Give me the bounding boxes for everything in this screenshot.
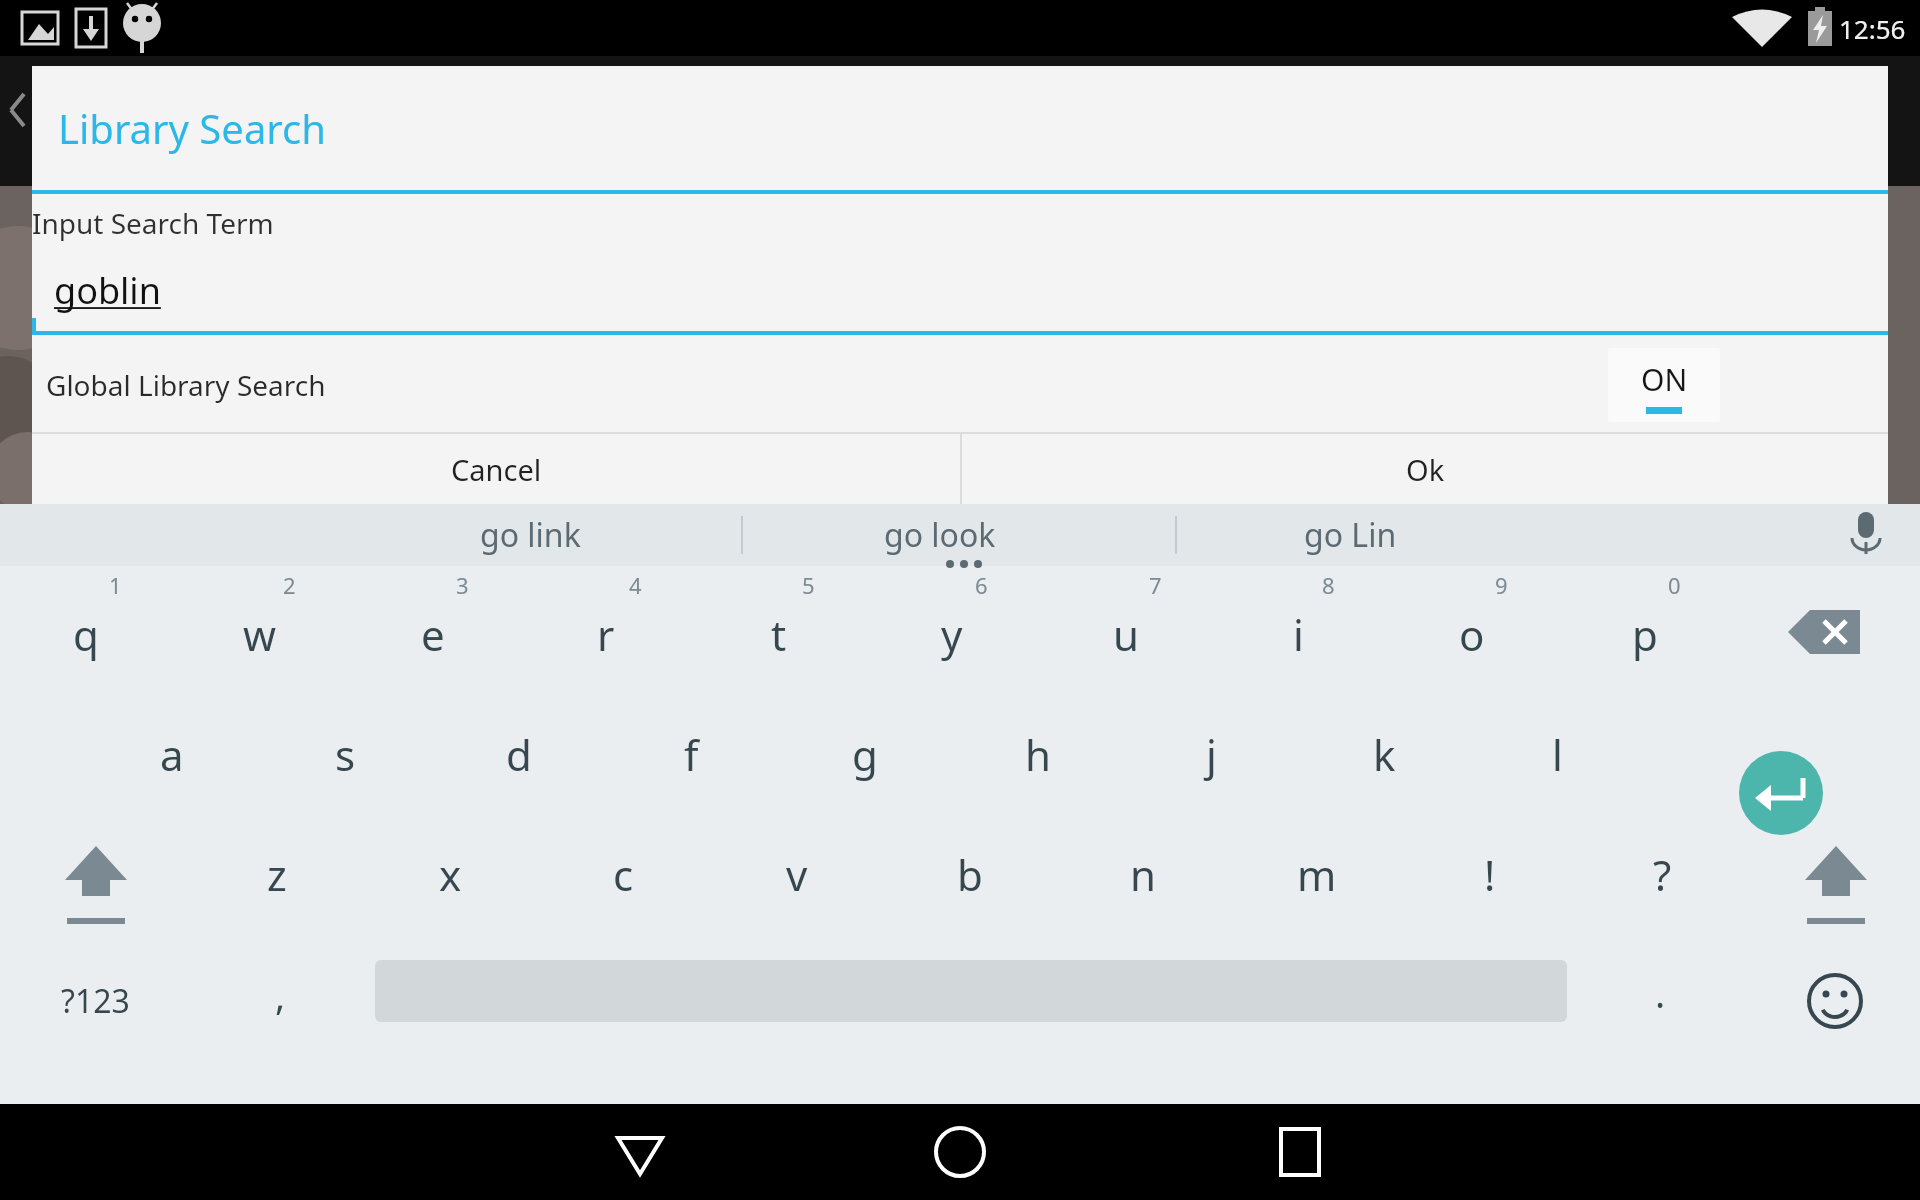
staticText: n [1130, 846, 1156, 903]
button[interactable]: Emoji [1780, 946, 1890, 1056]
button[interactable]: Ok [962, 434, 1888, 504]
staticText: 2 [283, 570, 296, 600]
button[interactable]: s [259, 686, 432, 806]
button[interactable]: x [364, 806, 537, 926]
button[interactable]: Shift [1776, 830, 1896, 940]
staticText: 9 [1495, 570, 1508, 600]
staticText: h [1025, 726, 1051, 783]
staticText: 7 [1149, 570, 1162, 600]
staticText: g [852, 726, 878, 783]
button[interactable]: z [190, 806, 363, 926]
button[interactable]: Shift [36, 830, 156, 940]
button[interactable]: c [537, 806, 710, 926]
button[interactable]: w [173, 566, 346, 686]
button[interactable]: e [346, 566, 519, 686]
staticText: go link [480, 513, 581, 557]
button[interactable]: Back [580, 1104, 700, 1200]
button[interactable]: k [1298, 686, 1471, 806]
button[interactable]: Cancel [32, 434, 960, 504]
staticText: x [439, 846, 462, 903]
staticText: k [1373, 726, 1396, 783]
staticText: 3 [456, 570, 469, 600]
staticText: m [1297, 846, 1337, 903]
staticText: 1 [109, 570, 122, 600]
staticText: ?123 [61, 979, 130, 1023]
staticText: d [506, 726, 532, 783]
button[interactable]: go Lin [1220, 504, 1480, 566]
button[interactable]: j [1125, 686, 1298, 806]
button[interactable]: go look [810, 504, 1070, 566]
button[interactable]: d [432, 686, 605, 806]
staticText: u [1113, 606, 1139, 663]
button[interactable]: o [1385, 566, 1558, 686]
staticText: 12:56 [1839, 11, 1906, 46]
staticText: w [243, 606, 277, 663]
staticText: s [335, 726, 356, 783]
staticText: 8 [1322, 570, 1335, 600]
button[interactable]: m [1230, 806, 1403, 926]
button[interactable]: i [1212, 566, 1385, 686]
staticText: Ok [1406, 450, 1445, 489]
staticText: v [786, 846, 808, 903]
staticText: Cancel [451, 450, 542, 489]
button[interactable]: Backspace [1770, 592, 1882, 672]
button[interactable]: g [778, 686, 951, 806]
staticText: r [597, 606, 615, 663]
button[interactable]: v [710, 806, 883, 926]
button[interactable]: Home [900, 1104, 1020, 1200]
staticText: c [613, 846, 634, 903]
button[interactable]: l [1471, 686, 1644, 806]
staticText: Global Library Search [46, 366, 326, 404]
button[interactable]: ?123 [30, 946, 160, 1056]
staticText: Library Search [58, 101, 326, 155]
staticText: i [1293, 606, 1304, 663]
staticText: ON [1641, 359, 1688, 400]
staticText: ! [1484, 846, 1496, 903]
staticText: l [1552, 726, 1563, 783]
staticText: , [275, 969, 286, 1021]
button[interactable]: p [1558, 566, 1731, 686]
staticText: q [73, 606, 99, 663]
staticText: a [160, 726, 184, 783]
staticText: e [421, 606, 445, 663]
staticText: p [1632, 606, 1658, 663]
staticText: 0 [1668, 570, 1681, 600]
staticText: Input Search Term [32, 204, 274, 242]
button[interactable]: f [605, 686, 778, 806]
staticText: 5 [802, 570, 815, 600]
button[interactable]: h [951, 686, 1124, 806]
button[interactable]: Enter [1716, 728, 1846, 858]
button[interactable]: a [85, 686, 258, 806]
staticText: f [684, 726, 699, 783]
staticText: go look [884, 513, 996, 557]
button[interactable]: . [1605, 946, 1715, 1056]
button[interactable]: y [865, 566, 1038, 686]
button[interactable]: ? [1576, 806, 1749, 926]
staticText: z [267, 846, 287, 903]
button[interactable]: q [0, 566, 172, 686]
button[interactable]: Recents [1240, 1104, 1360, 1200]
button[interactable]: b [883, 806, 1056, 926]
staticText: 6 [975, 570, 988, 600]
button[interactable]: r [519, 566, 692, 686]
staticText: 4 [629, 570, 642, 600]
button[interactable]: u [1039, 566, 1212, 686]
staticText: j [1206, 726, 1217, 783]
staticText: y [941, 606, 963, 663]
button[interactable]: n [1056, 806, 1229, 926]
staticText: goblin [54, 266, 161, 315]
staticText: t [771, 606, 787, 663]
staticText: ? [1653, 846, 1672, 903]
button[interactable]: t [692, 566, 865, 686]
staticText: go Lin [1304, 513, 1397, 557]
button[interactable]: ON [1608, 348, 1720, 422]
staticText: . [1655, 967, 1666, 1019]
button[interactable]: , [225, 946, 335, 1056]
staticText: b [957, 846, 983, 903]
staticText: o [1459, 606, 1485, 663]
button[interactable]: go link [400, 504, 660, 566]
button[interactable]: ! [1403, 806, 1576, 926]
